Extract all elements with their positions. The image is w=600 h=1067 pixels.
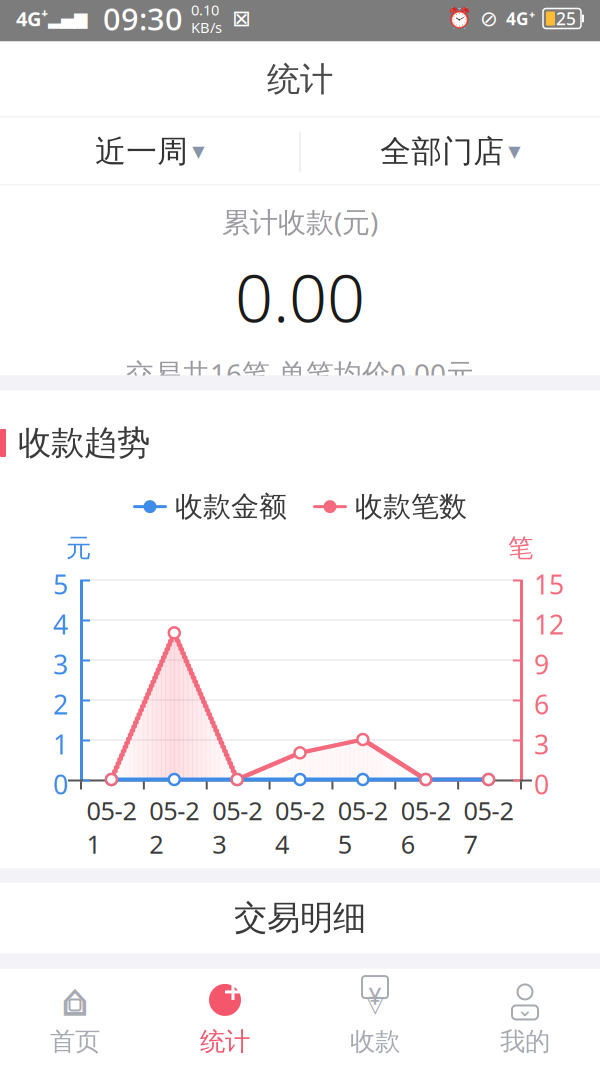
staticText: 统计 [200,1026,250,1057]
staticText: 全部门店 [380,133,504,170]
staticText: 2 [53,686,68,722]
staticText: 15 [534,566,564,602]
staticText: 元 [66,532,91,564]
staticText: 05-23 [212,793,262,861]
staticText: 9 [534,646,549,682]
staticText: 累计收款(元) [222,203,378,240]
staticText: ▼ [508,142,520,161]
staticText: 统计 [267,59,333,100]
staticText: KB/s [191,17,222,37]
staticText: 近一周 [95,133,188,170]
staticText: 05-26 [401,793,451,861]
staticText: 4G⁺ [16,5,48,32]
button[interactable]: ⌄ [450,967,600,1067]
staticText: ▂▄▆ [48,9,87,28]
staticText: 笔 [508,532,533,564]
staticText: 收款趋势 [18,422,150,463]
staticText: ⏰ [447,7,472,30]
staticText: 0.10 [191,0,219,19]
staticText: ¥ [368,981,381,1011]
staticText: 05-27 [464,793,514,861]
staticText: 3 [534,726,549,762]
staticText: 12 [534,606,564,642]
button[interactable]: ⌂ [0,967,150,1067]
button[interactable]: 交易明细 [0,882,600,953]
staticText: 05-24 [275,793,325,861]
button[interactable]: 近一周 [0,117,299,185]
staticText: 我的 [500,1026,550,1057]
staticText: 05-22 [149,793,199,861]
staticText: 4 [53,606,68,642]
staticText: 收款金额 [175,489,287,524]
staticText: 05-21 [86,793,136,861]
staticText: 收款笔数 [355,489,467,524]
button[interactable]: ▽ [300,967,450,1067]
staticText: 交易明细 [234,897,366,938]
staticText: 3 [53,646,68,682]
staticText: 0 [534,766,549,802]
staticText: 收款 [350,1026,400,1057]
staticText: ▽ [366,991,383,1017]
button[interactable]: 统计 [150,967,300,1067]
staticText: 交易共16笔 单笔均价0.00元 [126,355,474,392]
staticText: 1 [53,726,68,762]
staticText: 5 [53,566,68,602]
staticText: 09:30 [87,0,183,39]
staticText: ⌂ [60,974,89,1026]
staticText: 6 [534,686,549,722]
staticText: ▼ [192,142,204,161]
staticText: 0.00 [235,252,365,341]
button[interactable]: 全部门店 [300,117,600,185]
staticText: ⊘ [480,6,498,31]
staticText: 0 [53,766,68,802]
staticText: ⊠ [232,6,251,31]
staticText: 首页 [50,1026,100,1057]
staticText: 05-25 [338,793,388,861]
staticText: 4G⁺ [506,7,535,30]
staticText: 25 [556,7,576,30]
staticText: ⌄ [516,998,533,1021]
